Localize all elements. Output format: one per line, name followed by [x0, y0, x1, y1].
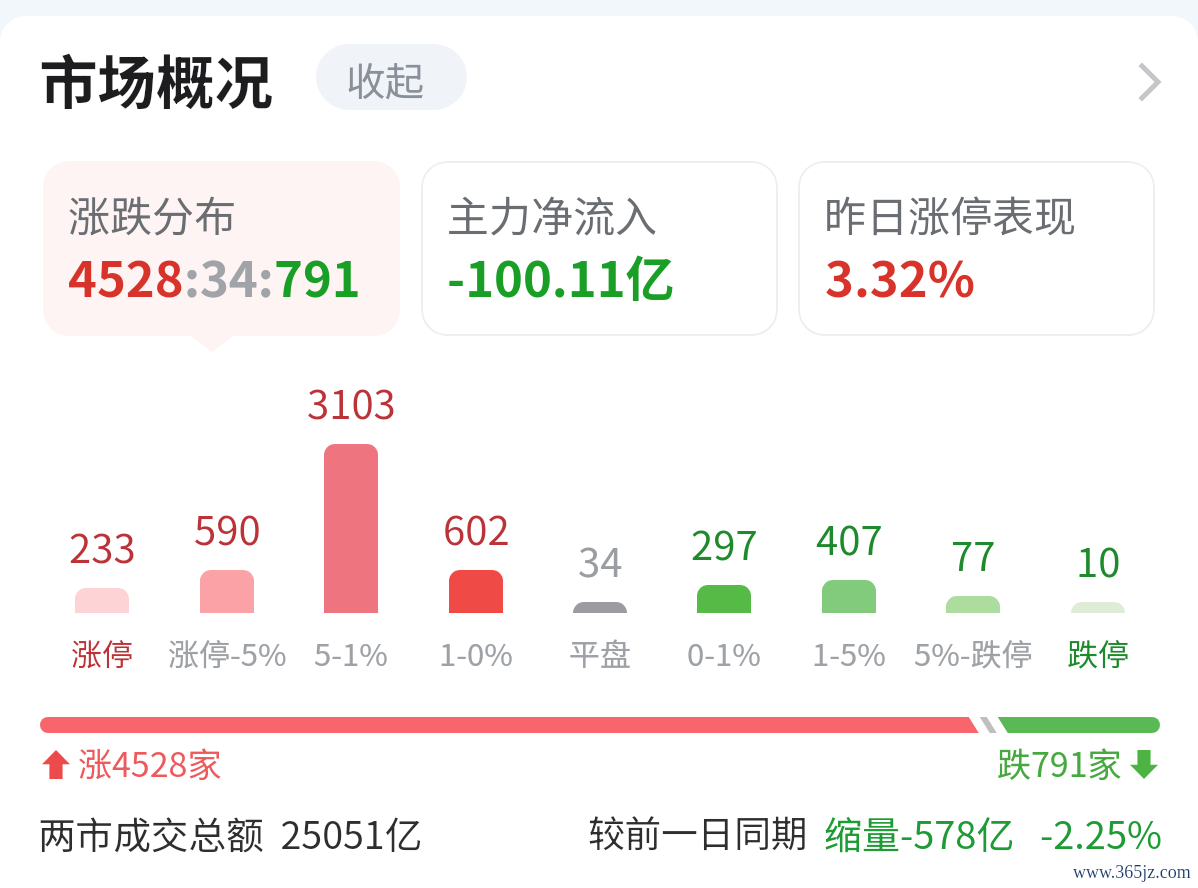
button[interactable]: 查看更多 [1122, 46, 1178, 118]
staticText: 10 [1076, 531, 1121, 589]
staticText: 4528 [68, 240, 184, 311]
other: 上涨 [42, 750, 70, 779]
staticText: 涨停 [71, 630, 133, 675]
staticText: 34 [578, 531, 623, 589]
staticText: 1-5% [812, 630, 886, 675]
staticText: 407 [816, 509, 883, 567]
staticText: 5-1% [314, 630, 388, 675]
staticText: 233 [69, 517, 136, 575]
staticText: -100.11亿 [447, 240, 675, 311]
staticText: 0-1% [687, 630, 761, 675]
staticText: 涨跌分布 [68, 183, 237, 244]
staticText: 3.32% [825, 240, 975, 311]
button[interactable] [421, 161, 778, 336]
staticText: 昨日涨停表现 [824, 183, 1077, 244]
staticText: 77 [951, 525, 996, 583]
staticText: 1-0% [439, 630, 513, 675]
staticText: 涨停-5% [168, 630, 287, 675]
staticText: 较前一日同期 [588, 805, 808, 858]
staticText: 收起 [346, 51, 425, 107]
staticText: :34: [184, 240, 274, 311]
staticText: 跌停 [1067, 630, 1129, 675]
staticText: 791 [274, 240, 361, 311]
staticText: 5%-跌停 [914, 630, 1033, 675]
staticText: 涨4528家 [78, 738, 222, 787]
staticText: 3103 [307, 373, 396, 431]
staticText: 主力净流入 [447, 183, 658, 244]
button[interactable] [43, 161, 400, 352]
button[interactable] [798, 161, 1155, 336]
other: 下跌 [1130, 750, 1158, 779]
staticText: 590 [194, 499, 261, 557]
staticText: 297 [691, 514, 758, 572]
button[interactable]: 市场概况 [39, 36, 274, 121]
staticText: 市场概况 [39, 36, 274, 121]
staticText: www.365jz.com [1073, 862, 1191, 882]
staticText: 平盘 [569, 630, 631, 675]
staticText: 两市成交总额 25051亿 [38, 805, 423, 859]
staticText: 缩量-578亿 -2.25% [824, 805, 1163, 860]
staticText: 跌791家 [997, 738, 1122, 787]
button[interactable]: 收起 [316, 44, 467, 110]
staticText: 602 [443, 499, 510, 557]
